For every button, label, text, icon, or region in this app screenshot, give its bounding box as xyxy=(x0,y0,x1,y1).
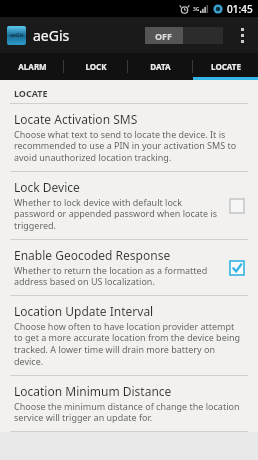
staticText: Lock Device xyxy=(14,179,80,195)
staticText: Location Update Interval xyxy=(14,303,154,319)
button[interactable]: Lock Device xyxy=(0,172,258,240)
staticText: aeGis xyxy=(33,26,70,45)
button[interactable]: Enable Geocoded Response xyxy=(0,240,258,296)
button[interactable]: Checked xyxy=(226,257,248,279)
staticText: aeGis xyxy=(10,32,24,39)
button[interactable]: More options xyxy=(233,17,251,53)
staticText: ALARM xyxy=(18,61,47,72)
staticText: OFF xyxy=(155,30,173,42)
button[interactable]: Location Minimum Distance xyxy=(0,376,258,432)
staticText: LOCATE xyxy=(211,61,241,72)
staticText: Choose the minimum distance of change th… xyxy=(14,400,242,424)
button[interactable]: Locate Activation SMS xyxy=(0,104,258,172)
staticText: Whether to lock device with default lock… xyxy=(14,196,220,232)
button[interactable]: Service toggle, off xyxy=(145,27,223,44)
staticText: Enable Geocoded Response xyxy=(14,247,171,263)
staticText: 3G xyxy=(193,6,200,13)
staticText: Choose what text to send to locate the d… xyxy=(14,128,242,164)
button[interactable]: LOCK xyxy=(64,53,128,80)
button[interactable]: Location Update Interval xyxy=(0,296,258,376)
staticText: 01:45 xyxy=(227,2,253,16)
button[interactable]: LOCATE xyxy=(193,53,258,80)
staticText: Choose how often to have location provid… xyxy=(14,320,242,368)
button[interactable]: ALARM xyxy=(0,53,64,80)
staticText: Whether to return the location as a form… xyxy=(14,264,220,288)
button[interactable]: Unchecked xyxy=(226,195,248,217)
staticText: Location Minimum Distance xyxy=(14,383,172,399)
staticText: LOCATE xyxy=(14,87,48,99)
staticText: LOCK xyxy=(85,61,107,72)
staticText: DATA xyxy=(150,61,171,72)
staticText: Locate Activation SMS xyxy=(14,111,138,127)
button[interactable]: DATA xyxy=(128,53,193,80)
